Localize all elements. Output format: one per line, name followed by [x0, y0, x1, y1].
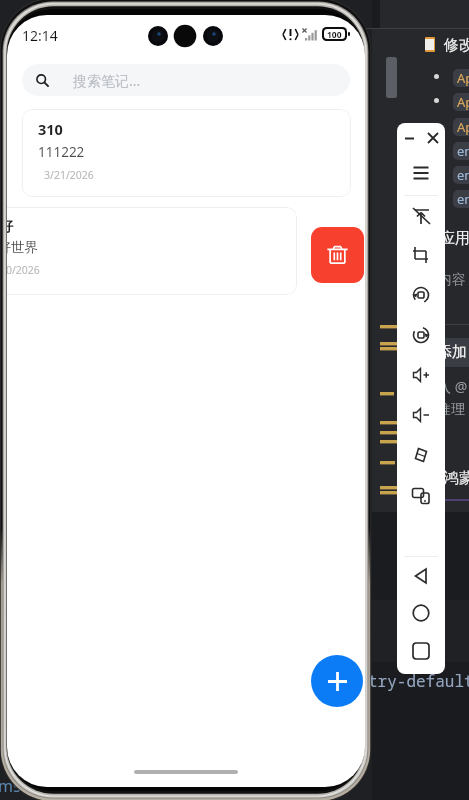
button[interactable]: 你好 — [7, 207, 297, 295]
button[interactable]: Delete note — [311, 227, 364, 283]
staticText: try-default — [368, 670, 469, 692]
staticText: 鸿蒙 — [444, 469, 469, 488]
button[interactable]: Home — [401, 599, 441, 627]
button[interactable]: 搜索笔记... — [22, 64, 350, 96]
staticText: 修改 — [444, 36, 469, 55]
staticText: 应用 — [440, 229, 469, 248]
staticText: 你好世界 — [7, 239, 38, 256]
staticText: 310 — [38, 119, 63, 139]
staticText: 入 @ — [437, 377, 468, 396]
staticText: 3/21/2026 — [44, 168, 94, 182]
staticText: 你好 — [7, 217, 13, 235]
button[interactable]: Add note — [311, 655, 363, 707]
staticText: 100 — [327, 29, 342, 39]
button[interactable]: Recents — [401, 637, 441, 665]
staticText: Ap — [457, 118, 469, 136]
button[interactable]: Volume down — [401, 401, 441, 429]
button[interactable]: 310 — [22, 109, 351, 197]
button[interactable]: Screenshot — [401, 241, 441, 269]
button[interactable]: Menu — [401, 159, 441, 187]
staticText: 111222 — [38, 143, 85, 161]
button[interactable]: Rotate right — [401, 321, 441, 349]
button[interactable]: Back — [401, 562, 441, 590]
button[interactable]: Rotate left — [401, 281, 441, 309]
button[interactable]: Minimize — [399, 128, 419, 148]
staticText: Ap — [457, 69, 469, 87]
staticText: en — [457, 142, 469, 160]
staticText: en — [457, 166, 469, 184]
staticText: Ap — [457, 93, 469, 111]
staticText: en — [457, 190, 469, 208]
staticText: 添加 — [437, 343, 467, 362]
button[interactable]: Volume up — [401, 361, 441, 389]
staticText: 12:14 — [22, 26, 58, 45]
staticText: 搜索笔记... — [73, 71, 141, 90]
staticText: 3/20/2026 — [7, 263, 40, 277]
staticText: 推理 — [437, 401, 465, 419]
button[interactable]: Close — [422, 128, 443, 148]
staticText: 内容 — [438, 271, 466, 289]
button[interactable]: Power off — [401, 202, 441, 230]
button[interactable]: Pair device — [401, 481, 441, 509]
staticText: ms — [0, 775, 21, 797]
button[interactable]: Fold — [401, 441, 441, 469]
